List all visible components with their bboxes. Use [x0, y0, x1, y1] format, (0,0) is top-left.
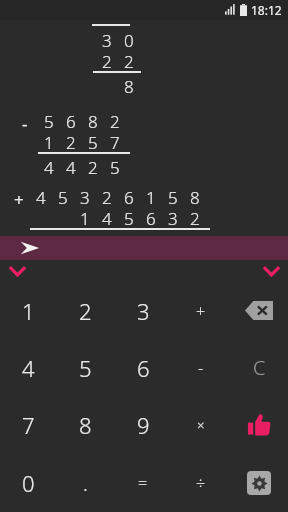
button[interactable]: C [230, 339, 288, 396]
staticText: 5 [110, 156, 120, 177]
staticText: 4 [66, 156, 76, 177]
staticText: 5 [44, 110, 54, 131]
staticText: 1 [22, 296, 35, 326]
staticText: 7 [22, 410, 35, 440]
staticText: 2 [79, 296, 92, 326]
staticText: 2 [88, 156, 98, 177]
button[interactable]: × [172, 396, 230, 454]
staticText: 18:12 [251, 2, 282, 18]
staticText: 1 [44, 131, 54, 152]
staticText: 6 [146, 207, 156, 228]
staticText: 3 [80, 186, 90, 207]
staticText: 6 [137, 353, 150, 383]
staticText: 8 [190, 186, 200, 207]
staticText: 1 [124, 232, 134, 253]
staticText: = [138, 472, 148, 494]
staticText: 7 [102, 232, 112, 253]
staticText: 2 [102, 186, 112, 207]
staticText: 2 [190, 207, 200, 228]
staticText: 8 [124, 75, 134, 96]
staticText: 6 [124, 186, 134, 207]
button[interactable]: . [57, 454, 114, 512]
staticText: 0 [22, 468, 35, 498]
button[interactable]: 1 [0, 282, 57, 339]
other: Cursor [20, 241, 40, 255]
button[interactable]: 2 [57, 282, 114, 339]
button[interactable]: 0 [0, 454, 57, 512]
staticText: 5 [58, 232, 68, 253]
button[interactable]: - [172, 339, 230, 396]
button[interactable]: ÷ [172, 454, 230, 512]
button[interactable]: 3 [114, 282, 172, 339]
button[interactable]: 6 [114, 339, 172, 396]
button[interactable]: 4 [0, 339, 57, 396]
staticText: 4 [36, 232, 46, 253]
staticText: 3 [168, 207, 178, 228]
button[interactable]: 5 [57, 339, 114, 396]
staticText: 7 [146, 232, 156, 253]
button[interactable]: Scroll down left [0, 260, 34, 282]
staticText: + [196, 300, 206, 322]
staticText: 0 [124, 29, 134, 50]
staticText: 4 [22, 353, 35, 383]
staticText: 1 [80, 207, 90, 228]
staticText: 7 [110, 131, 120, 152]
staticText: 5 [124, 207, 134, 228]
staticText: 5 [88, 131, 98, 152]
button[interactable]: Scroll down right [254, 260, 288, 282]
button[interactable]: Settings [230, 454, 288, 512]
button[interactable]: 9 [114, 396, 172, 454]
staticText: - [198, 357, 204, 379]
button[interactable]: 7 [0, 396, 57, 454]
staticText: 2 [110, 110, 120, 131]
button[interactable]: Backspace [230, 282, 288, 339]
staticText: . [83, 470, 88, 497]
staticText: 3 [102, 29, 112, 50]
staticText: 4 [36, 186, 46, 207]
staticText: 4 [44, 156, 54, 177]
staticText: 6 [66, 110, 76, 131]
staticText: 2 [124, 50, 134, 71]
staticText: 4 [80, 232, 90, 253]
button[interactable]: 8 [57, 396, 114, 454]
staticText: ÷ [196, 472, 206, 494]
button[interactable]: = [114, 454, 172, 512]
staticText: 4 [102, 207, 112, 228]
staticText: 0 [190, 232, 200, 253]
staticText: + [14, 188, 24, 211]
staticText: 2 [102, 50, 112, 71]
staticText: × [197, 416, 205, 434]
staticText: 3 [137, 296, 150, 326]
button[interactable]: Cursor [0, 236, 288, 260]
staticText: 9 [168, 232, 178, 253]
staticText: C [253, 354, 266, 381]
staticText: 1 [146, 186, 156, 207]
staticText: 5 [168, 186, 178, 207]
staticText: 9 [137, 410, 150, 440]
staticText: 8 [88, 110, 98, 131]
button[interactable]: Like [230, 396, 288, 454]
staticText: 2 [66, 131, 76, 152]
staticText: - [22, 112, 28, 135]
staticText: 5 [79, 353, 92, 383]
staticText: 8 [79, 410, 92, 440]
staticText: 5 [58, 186, 68, 207]
button[interactable]: + [172, 282, 230, 339]
